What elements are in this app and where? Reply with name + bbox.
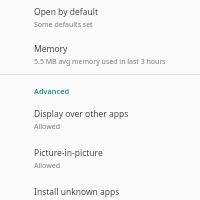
staticText: Open by default [34, 6, 98, 18]
staticText: Allowed [34, 122, 60, 132]
button[interactable]: Advanced [0, 86, 200, 96]
staticText: Memory [34, 43, 68, 55]
staticText: Display over other apps [34, 108, 129, 120]
staticText: 5.5 MB avg memory used in last 3 hours [34, 57, 166, 67]
staticText: Picture-in-picture [34, 147, 103, 159]
staticText: Allowed [34, 161, 60, 171]
button[interactable]: Display over other apps [0, 108, 200, 132]
staticText: Advanced [34, 86, 70, 96]
staticText: Some defaults set [34, 20, 93, 30]
button[interactable]: Picture-in-picture [0, 147, 200, 171]
button[interactable]: Open by default [0, 0, 200, 30]
button[interactable]: Install unknown apps [0, 186, 200, 200]
staticText: Install unknown apps [34, 186, 120, 198]
button[interactable]: Memory [0, 43, 200, 67]
